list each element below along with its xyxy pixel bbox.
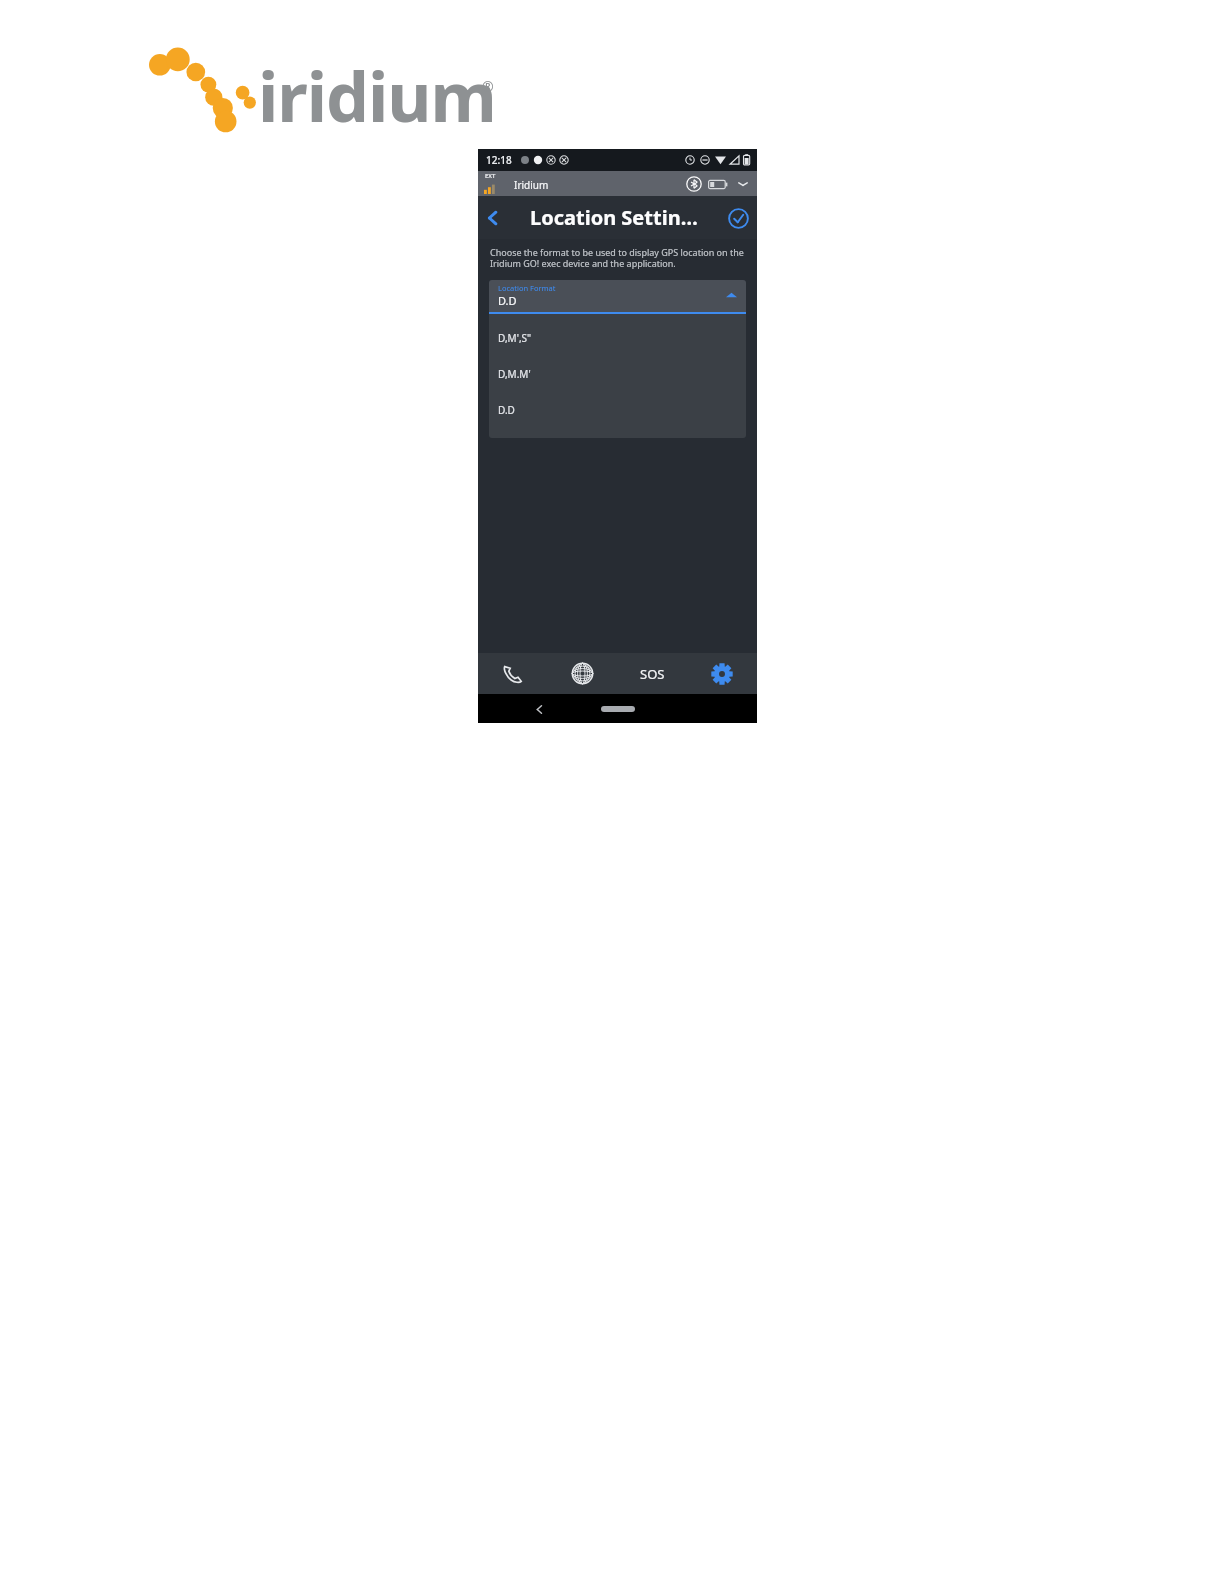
- button[interactable]: D.D: [489, 392, 746, 428]
- staticText: D.D: [498, 403, 515, 417]
- button[interactable]: D,M',S": [489, 320, 746, 356]
- staticText: D,M.M': [498, 367, 531, 381]
- staticText: D.D: [498, 293, 517, 308]
- button[interactable]: Location Format: [489, 280, 746, 312]
- staticText: Location Format: [498, 283, 556, 293]
- staticText: Choose the format to be used to display …: [490, 246, 745, 270]
- staticText: iridium: [258, 49, 496, 139]
- button[interactable]: Phone: [478, 653, 547, 694]
- button[interactable]: Settings: [687, 653, 757, 694]
- staticText: 12:18: [486, 153, 512, 167]
- button[interactable]: SOS: [617, 653, 687, 694]
- button[interactable]: D,M.M': [489, 356, 746, 392]
- button[interactable]: Home: [601, 706, 635, 712]
- button[interactable]: Internet: [547, 653, 617, 694]
- staticText: Location Settin…: [530, 204, 698, 231]
- staticText: D,M',S": [498, 331, 532, 345]
- staticText: Iridium: [514, 178, 549, 192]
- button[interactable]: Back: [526, 696, 552, 722]
- staticText: ®: [482, 77, 494, 96]
- button[interactable]: Back: [478, 203, 508, 233]
- staticText: SOS: [640, 665, 665, 683]
- button[interactable]: Confirm: [723, 203, 753, 233]
- staticText: EXT: [485, 172, 496, 180]
